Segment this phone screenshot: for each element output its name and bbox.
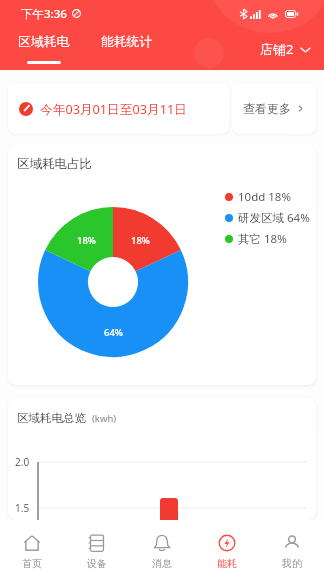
- staticText: 研发区域 64%: [238, 210, 310, 226]
- staticText: 2.0: [15, 455, 30, 469]
- staticText: (kwh): [92, 412, 117, 425]
- button[interactable]: 能耗: [194, 520, 259, 576]
- staticText: 10dd 18%: [238, 189, 292, 205]
- button[interactable]: 我的: [259, 520, 324, 576]
- button[interactable]: 设备: [64, 520, 129, 576]
- staticText: 能耗: [217, 557, 237, 570]
- staticText: 我的: [282, 557, 302, 570]
- button[interactable]: 消息: [129, 520, 194, 576]
- button[interactable]: 区域耗电: [5, 28, 83, 70]
- staticText: 店铺2: [260, 40, 294, 58]
- button[interactable]: 查看更多: [232, 83, 316, 134]
- staticText: 下午3:36: [21, 6, 67, 22]
- staticText: 区域耗电占比: [17, 156, 92, 172]
- staticText: 能耗统计: [101, 34, 153, 50]
- button[interactable]: 能耗统计: [88, 28, 166, 70]
- staticText: 设备: [87, 557, 107, 570]
- staticText: 区域耗电: [18, 34, 70, 50]
- button[interactable]: 首页: [0, 520, 64, 576]
- staticText: 18%: [77, 234, 96, 247]
- staticText: 今年03月01日至03月11日: [40, 100, 187, 117]
- staticText: 区域耗电总览: [17, 411, 86, 425]
- staticText: 查看更多: [243, 101, 291, 116]
- staticText: 18%: [131, 234, 150, 247]
- staticText: 其它 18%: [238, 231, 287, 247]
- button[interactable]: 今年03月01日至03月11日: [8, 83, 229, 134]
- staticText: 首页: [22, 557, 42, 570]
- staticText: 64%: [104, 326, 123, 339]
- staticText: 消息: [152, 557, 172, 570]
- staticText: 1.5: [15, 501, 30, 515]
- button[interactable]: 店铺2: [248, 28, 324, 70]
